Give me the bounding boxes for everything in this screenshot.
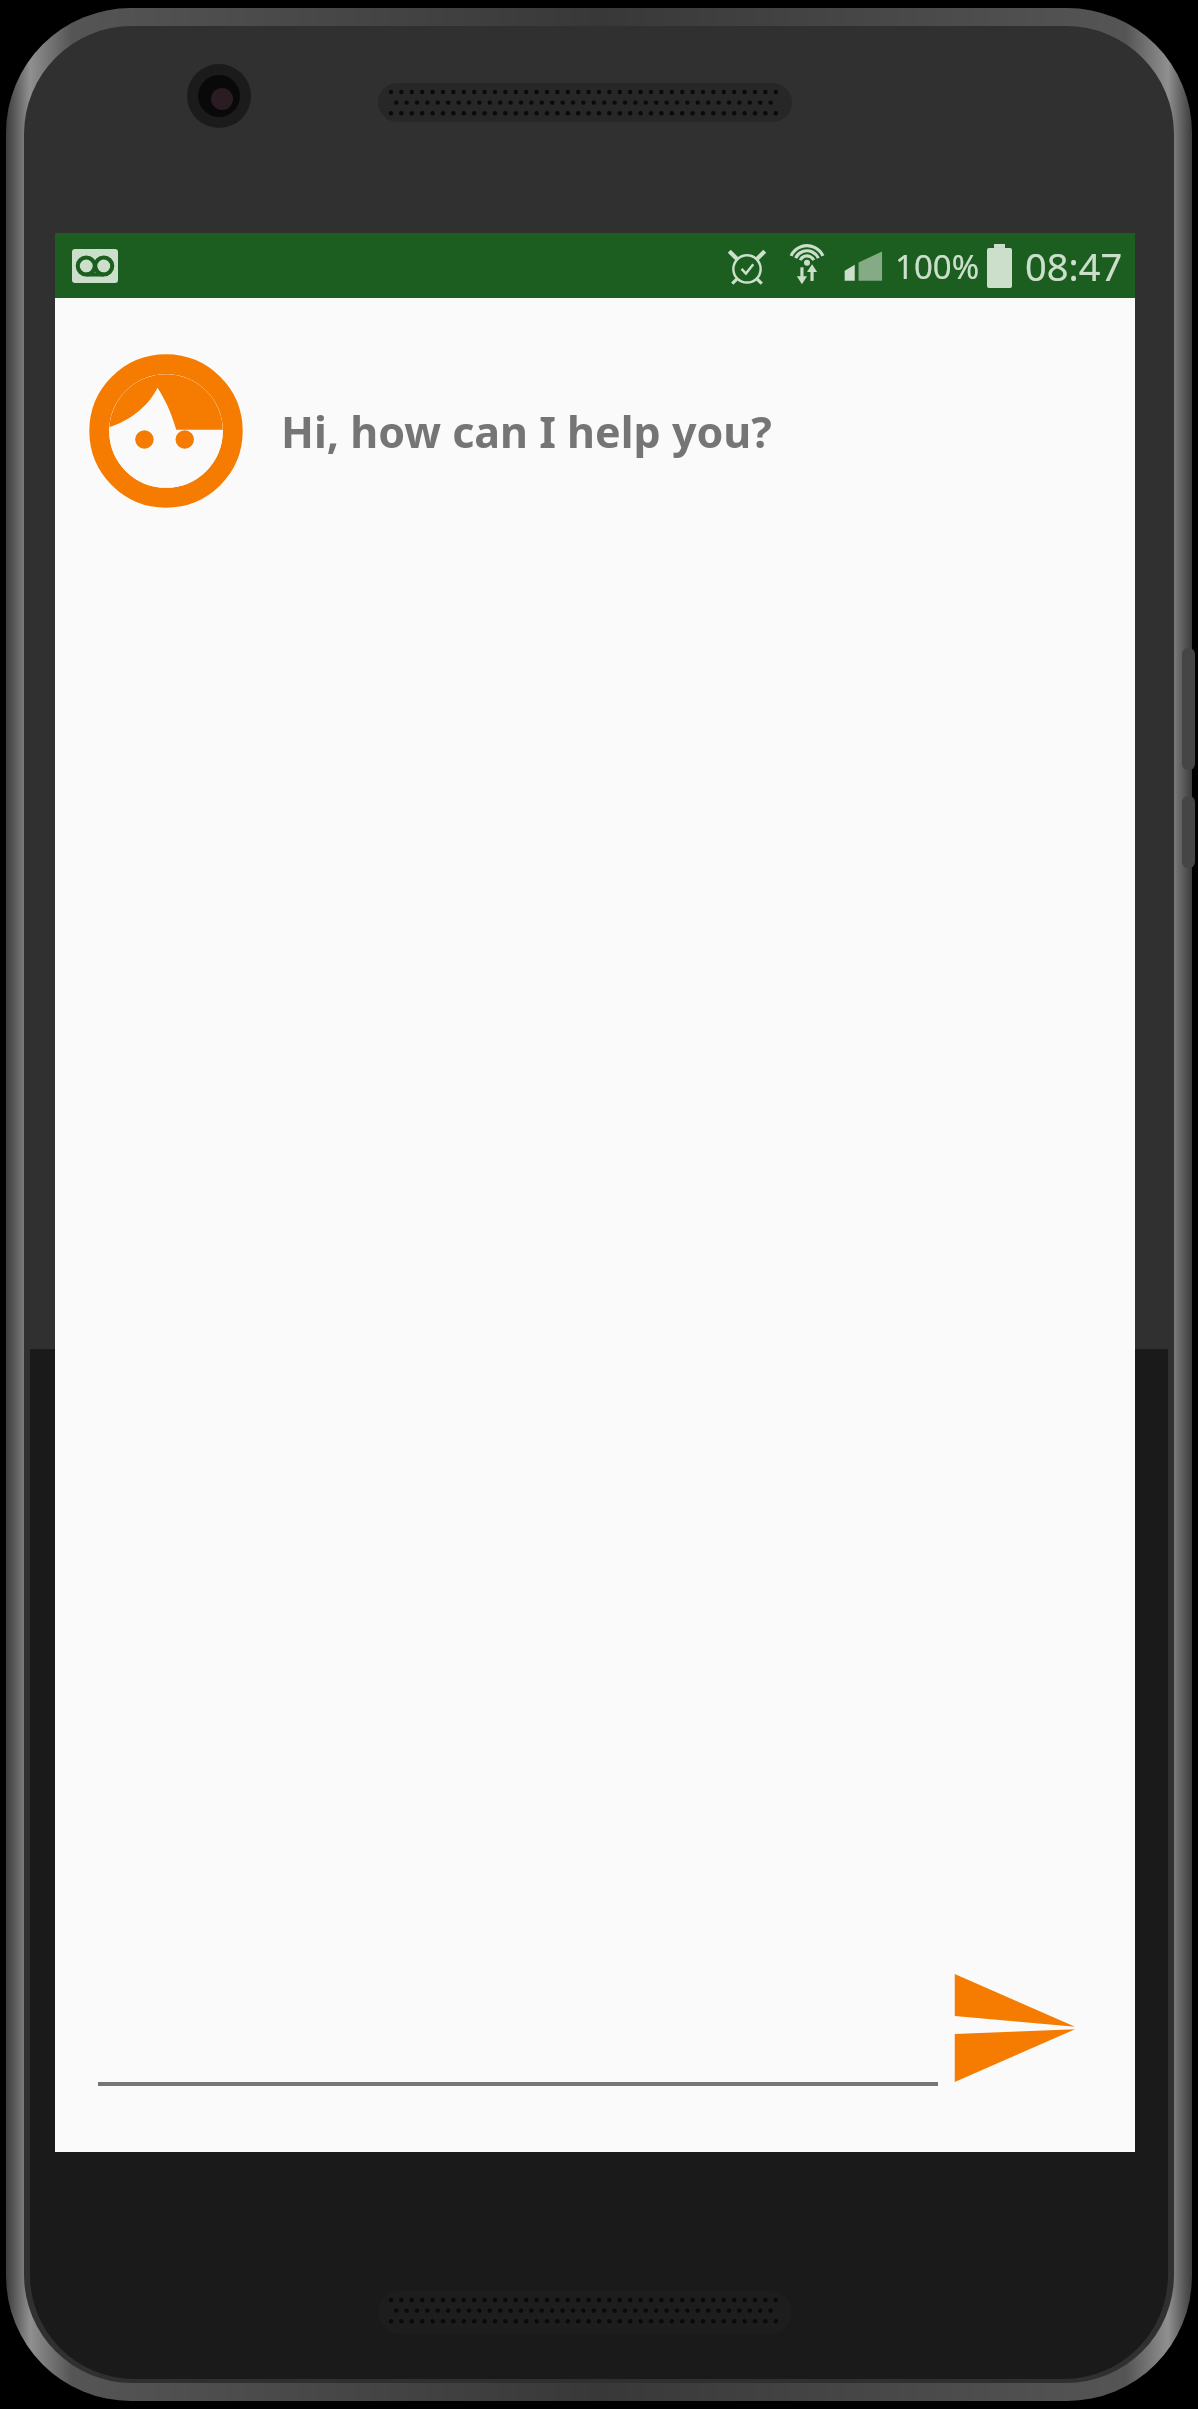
staticText: Hi, how can I help you? [281,402,772,461]
button[interactable] [98,1986,938,2086]
staticText: 100% [895,244,980,289]
button[interactable]: Send [948,1970,1078,2086]
button[interactable]: Hi, how can I help you? [95,360,1111,502]
staticText: 08:47 [1025,240,1123,292]
